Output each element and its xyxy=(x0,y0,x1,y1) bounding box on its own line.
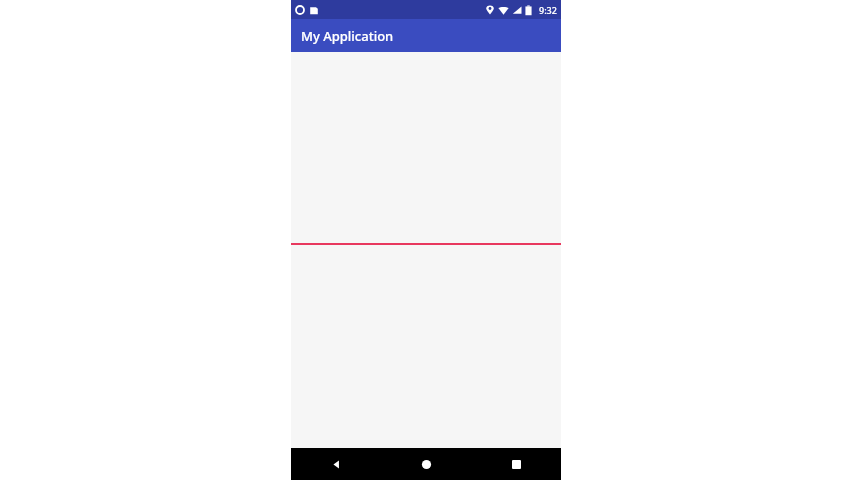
button[interactable]: Back xyxy=(291,448,381,480)
staticText: 9:32 xyxy=(539,4,557,16)
button[interactable]: Recent apps xyxy=(471,448,561,480)
staticText: My Application xyxy=(301,27,394,45)
button[interactable]: Home xyxy=(381,448,471,480)
button[interactable]: My Application xyxy=(291,19,561,52)
